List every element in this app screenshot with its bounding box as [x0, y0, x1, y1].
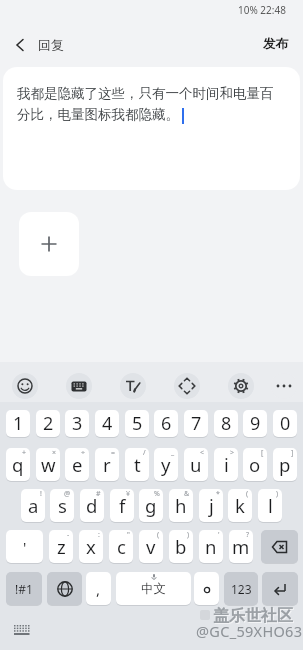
button[interactable]: , [86, 572, 111, 605]
staticText: @ [64, 489, 71, 499]
staticText: v [146, 534, 156, 559]
staticText: ' [23, 537, 27, 557]
button[interactable]: k [228, 489, 252, 522]
button[interactable]: f [110, 489, 134, 522]
staticText: 5 [132, 411, 143, 436]
button[interactable] [8, 33, 32, 57]
button[interactable]: 发布 [255, 31, 295, 57]
button[interactable]: v [139, 530, 163, 563]
button[interactable] [261, 530, 298, 563]
button[interactable] [66, 373, 92, 399]
button[interactable]: t [125, 448, 149, 481]
button[interactable]: h [169, 489, 193, 522]
button[interactable]: ' [6, 530, 43, 563]
staticText: ' [218, 530, 220, 540]
button[interactable]: o [243, 448, 267, 481]
staticText: : [98, 530, 100, 540]
button[interactable]: b [169, 530, 193, 563]
button[interactable]: y [154, 448, 178, 481]
staticText: ( [246, 489, 249, 499]
button[interactable] [120, 373, 146, 399]
button[interactable]: d [80, 489, 104, 522]
staticText: , [96, 579, 101, 599]
staticText: m [232, 534, 250, 559]
staticText: 盖乐世社区 [213, 606, 293, 626]
button[interactable] [12, 373, 38, 399]
staticText: [ [261, 448, 264, 458]
staticText: p [279, 452, 291, 477]
staticText: q [12, 452, 24, 477]
button[interactable]: 4 [95, 410, 119, 437]
staticText: 中文 [141, 581, 166, 597]
button[interactable] [271, 373, 297, 399]
button[interactable]: 7 [184, 410, 208, 437]
staticText: e [72, 452, 83, 477]
button[interactable]: 我都是隐藏了这些，只有一个时间和电量百 分比，电量图标我都隐藏。 [3, 67, 300, 190]
staticText: i [224, 452, 229, 477]
button[interactable]: e [65, 448, 89, 481]
staticText: 0 [280, 411, 291, 436]
staticText: ¥ [126, 489, 131, 499]
button[interactable]: l [258, 489, 282, 522]
button[interactable]: c [109, 530, 133, 563]
button[interactable]: u [184, 448, 208, 481]
staticText: ÷ [81, 448, 86, 458]
button[interactable] [228, 373, 254, 399]
staticText: < [200, 448, 205, 458]
button[interactable]: 9 [243, 410, 267, 437]
staticText: n [205, 534, 217, 559]
staticText: ) [276, 489, 279, 499]
staticText: + [22, 448, 27, 458]
button[interactable]: !#1 [6, 572, 42, 605]
staticText: _ [171, 448, 175, 458]
button[interactable]: 中文 [116, 572, 191, 605]
button[interactable] [19, 212, 79, 276]
staticText: g [145, 493, 157, 518]
staticText: ! [40, 489, 42, 499]
button[interactable]: 0 [273, 410, 297, 437]
staticText: × [52, 448, 57, 458]
button[interactable] [47, 572, 82, 605]
staticText: % [154, 489, 160, 499]
button[interactable]: p [273, 448, 297, 481]
button[interactable]: r [95, 448, 119, 481]
staticText: x [86, 534, 96, 559]
button[interactable]: x [79, 530, 103, 563]
button[interactable]: 2 [36, 410, 60, 437]
staticText: 4 [102, 411, 113, 436]
staticText: 8 [221, 411, 232, 436]
button[interactable]: 5 [125, 410, 149, 437]
button[interactable]: 123 [224, 572, 258, 605]
button[interactable]: 6 [154, 410, 178, 437]
button[interactable] [174, 373, 200, 399]
button[interactable]: m [229, 530, 253, 563]
button[interactable]: w [36, 448, 60, 481]
staticText: @GC_59XHO63 [196, 621, 303, 641]
button[interactable]: g [139, 489, 163, 522]
staticText: w [41, 452, 56, 477]
button[interactable]: n [199, 530, 223, 563]
button[interactable]: i [214, 448, 238, 481]
button[interactable]: 1 [6, 410, 30, 437]
staticText: h [175, 493, 187, 518]
button[interactable]: z [49, 530, 73, 563]
staticText: j [209, 493, 214, 518]
button[interactable]: 8 [214, 410, 238, 437]
staticText: z [57, 534, 66, 559]
button[interactable]: 3 [65, 410, 89, 437]
staticText: u [190, 452, 202, 477]
staticText: 10% 22:48 [238, 3, 286, 17]
staticText: > [230, 448, 235, 458]
button[interactable] [194, 572, 219, 605]
button[interactable]: s [50, 489, 74, 522]
button[interactable]: j [199, 489, 223, 522]
staticText: o [249, 452, 261, 477]
staticText: = [111, 448, 116, 458]
staticText: 9 [250, 411, 261, 436]
staticText: 3 [72, 411, 83, 436]
staticText: ( [157, 530, 160, 540]
staticText: 盖乐世社区 [214, 607, 294, 627]
button[interactable]: a [21, 489, 45, 522]
button[interactable] [262, 572, 298, 605]
button[interactable]: q [6, 448, 30, 481]
